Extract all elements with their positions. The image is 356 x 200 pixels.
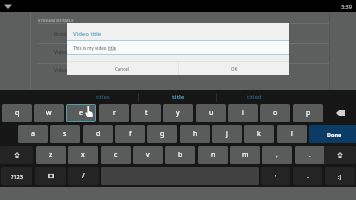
- button[interactable]: OK: [179, 62, 289, 75]
- button[interactable]: ': [261, 167, 290, 185]
- staticText: title: [172, 93, 185, 101]
- button[interactable]: u: [196, 104, 226, 122]
- staticText: OK: [231, 66, 238, 72]
- staticText: Video bitrate: [54, 49, 67, 56]
- button[interactable]: h: [180, 125, 210, 143]
- button[interactable]: ,: [262, 146, 292, 164]
- staticText: n: [211, 150, 216, 160]
- staticText: t: [145, 108, 148, 118]
- staticText: r: [113, 108, 116, 118]
- button[interactable]: n: [198, 146, 228, 164]
- button[interactable]: b: [165, 146, 195, 164]
- button[interactable]: Shift: [324, 146, 356, 164]
- button[interactable]: Shift: [0, 146, 33, 164]
- staticText: /: [82, 171, 85, 181]
- staticText: u: [209, 108, 214, 118]
- button[interactable]: e: [66, 104, 96, 122]
- staticText: v: [146, 150, 150, 160]
- button[interactable]: title: [143, 90, 213, 103]
- staticText: x: [81, 150, 85, 160]
- button[interactable]: o: [260, 104, 290, 122]
- staticText: a: [31, 129, 35, 139]
- button[interactable]: v: [133, 146, 163, 164]
- button[interactable]: Cancel: [67, 62, 178, 75]
- staticText: o: [273, 108, 278, 118]
- staticText: Video title: [73, 30, 102, 38]
- staticText: Done: [327, 131, 342, 138]
- button[interactable]: q: [2, 104, 32, 122]
- button[interactable]: Resolution: [54, 31, 67, 38]
- staticText: s: [63, 129, 67, 139]
- staticText: j: [226, 129, 228, 139]
- staticText: ,: [276, 151, 278, 159]
- button[interactable]: t: [131, 104, 161, 122]
- button[interactable]: titled: [219, 90, 289, 103]
- staticText: d: [96, 129, 101, 139]
- staticText: g: [160, 129, 165, 139]
- staticText: :): [338, 173, 342, 180]
- staticText: titles: [96, 93, 110, 101]
- staticText: Resolution: [54, 31, 67, 38]
- staticText: STREAM DETAILS: [38, 18, 74, 23]
- button[interactable]: f: [115, 125, 145, 143]
- button[interactable]: Switch keyboard: [35, 167, 66, 185]
- staticText: ?123: [11, 173, 23, 180]
- staticText: q: [15, 108, 20, 118]
- button[interactable]: .: [295, 146, 325, 164]
- staticText: z: [49, 150, 53, 160]
- staticText: w: [46, 108, 52, 118]
- staticText: This is my video: [73, 45, 108, 51]
- button[interactable]: d: [83, 125, 113, 143]
- staticText: y: [176, 108, 180, 118]
- staticText: f: [129, 129, 132, 139]
- staticText: titled: [247, 93, 262, 101]
- staticText: -: [307, 173, 309, 180]
- staticText: Cancel: [115, 66, 130, 72]
- button[interactable]: m: [230, 146, 260, 164]
- button[interactable]: titles: [68, 90, 138, 103]
- button[interactable]: s: [50, 125, 80, 143]
- button[interactable]: Video codec: [54, 67, 67, 74]
- button[interactable]: i: [228, 104, 258, 122]
- button[interactable]: p: [293, 104, 323, 122]
- staticText: m: [242, 150, 249, 160]
- button[interactable]: l: [277, 125, 307, 143]
- button[interactable]: r: [99, 104, 129, 122]
- staticText: e: [79, 108, 83, 118]
- staticText: p: [306, 108, 311, 118]
- button[interactable]: Wifi: [1, 0, 15, 12]
- staticText: k: [257, 129, 261, 139]
- button[interactable]: Video bitrate: [54, 49, 67, 56]
- button[interactable]: g: [147, 125, 177, 143]
- button[interactable]: a: [18, 125, 48, 143]
- button[interactable]: x: [68, 146, 98, 164]
- staticText: ': [275, 173, 277, 180]
- button[interactable]: y: [163, 104, 193, 122]
- staticText: title: [108, 45, 117, 51]
- button[interactable]: ?123: [1, 167, 32, 185]
- staticText: c: [114, 150, 118, 160]
- button[interactable]: j: [212, 125, 242, 143]
- button[interactable]: :): [325, 167, 355, 185]
- staticText: l: [291, 129, 293, 139]
- staticText: Video codec: [54, 67, 67, 74]
- button[interactable]: Backspace: [325, 104, 355, 122]
- button[interactable]: k: [244, 125, 274, 143]
- staticText: 3:39: [341, 3, 352, 10]
- staticText: .: [309, 151, 311, 159]
- button[interactable]: Done: [309, 125, 356, 143]
- staticText: i: [242, 108, 244, 118]
- staticText: h: [193, 129, 198, 139]
- staticText: b: [178, 150, 183, 160]
- button[interactable]: z: [36, 146, 66, 164]
- button[interactable]: /: [68, 167, 99, 185]
- button[interactable]: c: [101, 146, 131, 164]
- button[interactable]: w: [34, 104, 64, 122]
- button[interactable]: -: [293, 167, 322, 185]
